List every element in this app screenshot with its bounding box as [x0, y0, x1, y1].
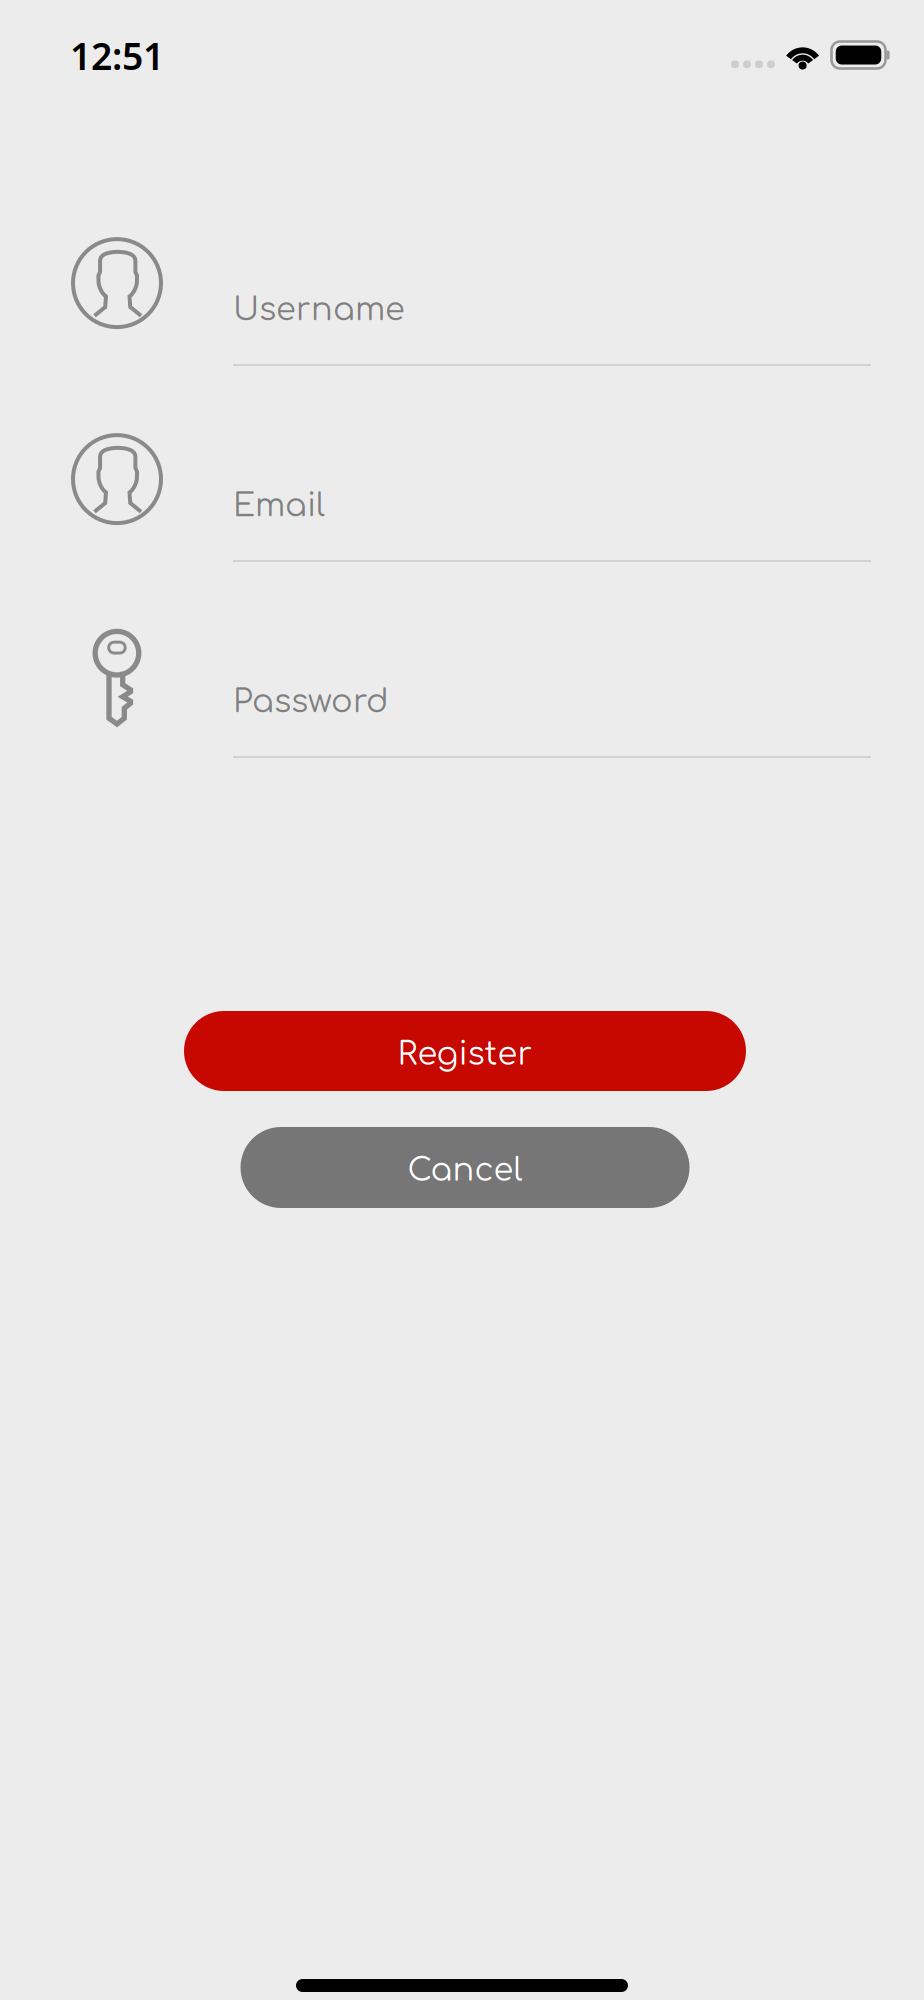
staticText: Username	[233, 292, 405, 328]
button[interactable]: Register	[184, 1011, 746, 1091]
staticText: Email	[233, 488, 325, 524]
staticText: 12:51	[70, 31, 164, 80]
staticText: Cancel	[407, 1153, 522, 1188]
staticText: Password	[233, 684, 389, 720]
staticText: Register	[397, 1037, 532, 1072]
button[interactable]: Cancel	[240, 1127, 689, 1208]
